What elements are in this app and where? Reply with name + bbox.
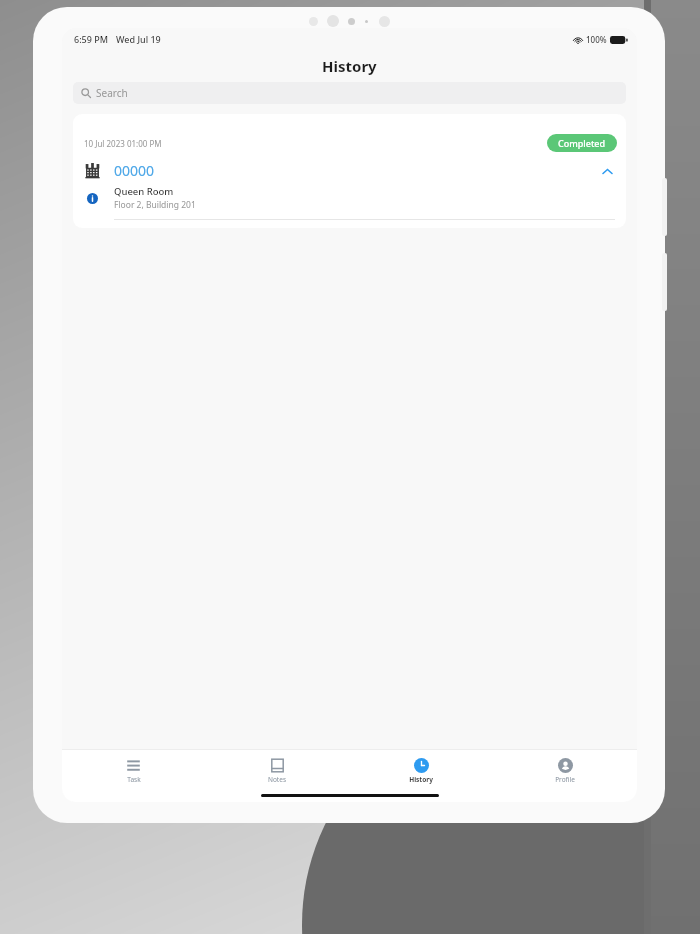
button[interactable]: Task — [62, 756, 205, 786]
staticText: History — [409, 775, 433, 784]
staticText: Profile — [555, 775, 575, 784]
staticText: Floor 2, Building 201 — [114, 199, 196, 211]
staticText: 10 Jul 2023 01:00 PM — [84, 138, 162, 149]
staticText: Notes — [268, 775, 286, 784]
button[interactable]: Notes — [205, 756, 349, 786]
button[interactable]: Completed — [547, 134, 617, 152]
button[interactable]: History — [349, 756, 493, 786]
staticText: Search — [96, 86, 128, 100]
staticText: Wed Jul 19 — [116, 33, 161, 45]
button[interactable]: Search — [73, 82, 626, 104]
staticText: History — [322, 56, 377, 76]
staticText: Task — [127, 775, 141, 784]
button[interactable]: Profile — [493, 756, 637, 786]
staticText: Completed — [558, 137, 606, 149]
staticText: 6:59 PM — [74, 33, 108, 45]
button[interactable]: Collapse — [599, 163, 615, 179]
staticText: 00000 — [114, 161, 155, 180]
button[interactable]: 10 Jul 2023 01:00 PM — [73, 114, 626, 228]
staticText: Queen Room — [114, 185, 174, 198]
staticText: 100% — [586, 34, 607, 45]
